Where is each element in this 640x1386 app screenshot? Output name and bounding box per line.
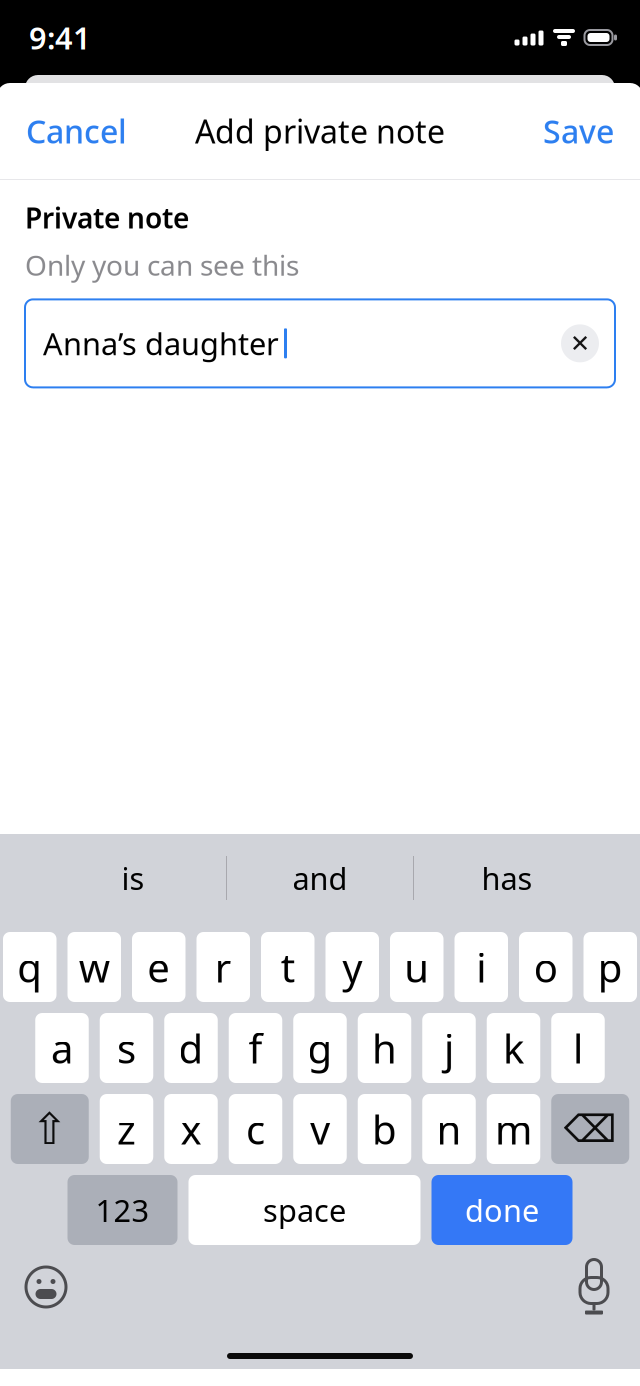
button[interactable]: d — [164, 1013, 218, 1083]
button[interactable]: 123 — [67, 1175, 177, 1245]
staticText: u — [404, 940, 429, 993]
button[interactable]: b — [358, 1094, 411, 1164]
button[interactable]: and — [227, 834, 413, 922]
button[interactable]: k — [487, 1013, 540, 1083]
staticText: j — [444, 1021, 454, 1074]
staticText: done — [465, 1190, 539, 1230]
staticText: x — [180, 1102, 201, 1155]
button[interactable]: g — [293, 1013, 347, 1083]
staticText: ⌫ — [564, 1108, 617, 1150]
button[interactable]: space — [188, 1175, 420, 1245]
button[interactable]: w — [67, 932, 121, 1002]
button[interactable]: has — [414, 834, 600, 922]
button[interactable]: Delete — [551, 1094, 629, 1164]
button[interactable]: j — [422, 1013, 476, 1083]
staticText: Add private note — [195, 110, 445, 152]
staticText: r — [215, 940, 232, 993]
staticText: 123 — [95, 1190, 149, 1230]
button[interactable]: v — [293, 1094, 347, 1164]
button[interactable]: r — [196, 932, 250, 1002]
staticText: n — [436, 1102, 461, 1155]
staticText: a — [51, 1021, 73, 1074]
staticText: s — [117, 1021, 136, 1074]
staticText: q — [17, 940, 42, 993]
staticText: p — [598, 940, 623, 993]
staticText: Anna’s daughter — [43, 323, 279, 364]
button[interactable]: u — [390, 932, 443, 1002]
staticText: h — [372, 1021, 397, 1074]
button[interactable]: e — [132, 932, 185, 1002]
staticText: b — [372, 1102, 397, 1155]
staticText: Only you can see this — [25, 246, 299, 283]
button[interactable]: is — [40, 834, 226, 922]
button[interactable]: n — [422, 1094, 476, 1164]
button[interactable]: Emoji keyboard — [19, 1260, 73, 1314]
button[interactable]: s — [100, 1013, 153, 1083]
button[interactable]: Dictation — [567, 1260, 621, 1314]
staticText: ⇧ — [31, 1104, 68, 1154]
button[interactable]: p — [583, 932, 637, 1002]
button[interactable]: z — [100, 1094, 153, 1164]
staticText: is — [121, 858, 144, 898]
button[interactable]: t — [261, 932, 314, 1002]
button[interactable]: l — [551, 1013, 605, 1083]
staticText: o — [534, 940, 558, 993]
staticText: Cancel — [26, 110, 127, 152]
button[interactable]: h — [358, 1013, 411, 1083]
button[interactable]: c — [229, 1094, 282, 1164]
staticText: e — [147, 940, 170, 993]
button[interactable]: done — [431, 1175, 572, 1245]
button[interactable]: m — [487, 1094, 540, 1164]
staticText: space — [263, 1190, 346, 1230]
staticText: w — [79, 940, 110, 993]
button[interactable]: a — [35, 1013, 89, 1083]
staticText: Private note — [25, 199, 189, 236]
staticText: c — [246, 1102, 265, 1155]
staticText: g — [307, 1021, 332, 1074]
staticText: ✕ — [570, 330, 590, 357]
staticText: i — [476, 940, 486, 993]
button[interactable]: o — [519, 932, 572, 1002]
staticText: m — [495, 1102, 532, 1155]
button[interactable]: Save — [531, 100, 626, 162]
staticText: y — [342, 940, 362, 993]
staticText: has — [481, 858, 532, 898]
button[interactable]: q — [3, 932, 56, 1002]
staticText: k — [503, 1021, 524, 1074]
staticText: 9:41 — [29, 17, 91, 58]
staticText: d — [178, 1021, 203, 1074]
staticText: t — [281, 940, 295, 993]
staticText: l — [573, 1021, 583, 1074]
staticText: Save — [543, 110, 614, 152]
button[interactable]: x — [164, 1094, 218, 1164]
staticText: z — [117, 1102, 136, 1155]
staticText: v — [310, 1102, 330, 1155]
staticText: and — [292, 858, 347, 898]
staticText: f — [248, 1021, 262, 1074]
button[interactable]: f — [229, 1013, 282, 1083]
button[interactable]: i — [454, 932, 508, 1002]
button[interactable]: Anna’s daughter — [25, 299, 615, 387]
button[interactable]: Shift — [11, 1094, 89, 1164]
button[interactable]: y — [325, 932, 379, 1002]
button[interactable]: Cancel — [14, 100, 139, 162]
button[interactable]: Clear text — [560, 323, 600, 363]
